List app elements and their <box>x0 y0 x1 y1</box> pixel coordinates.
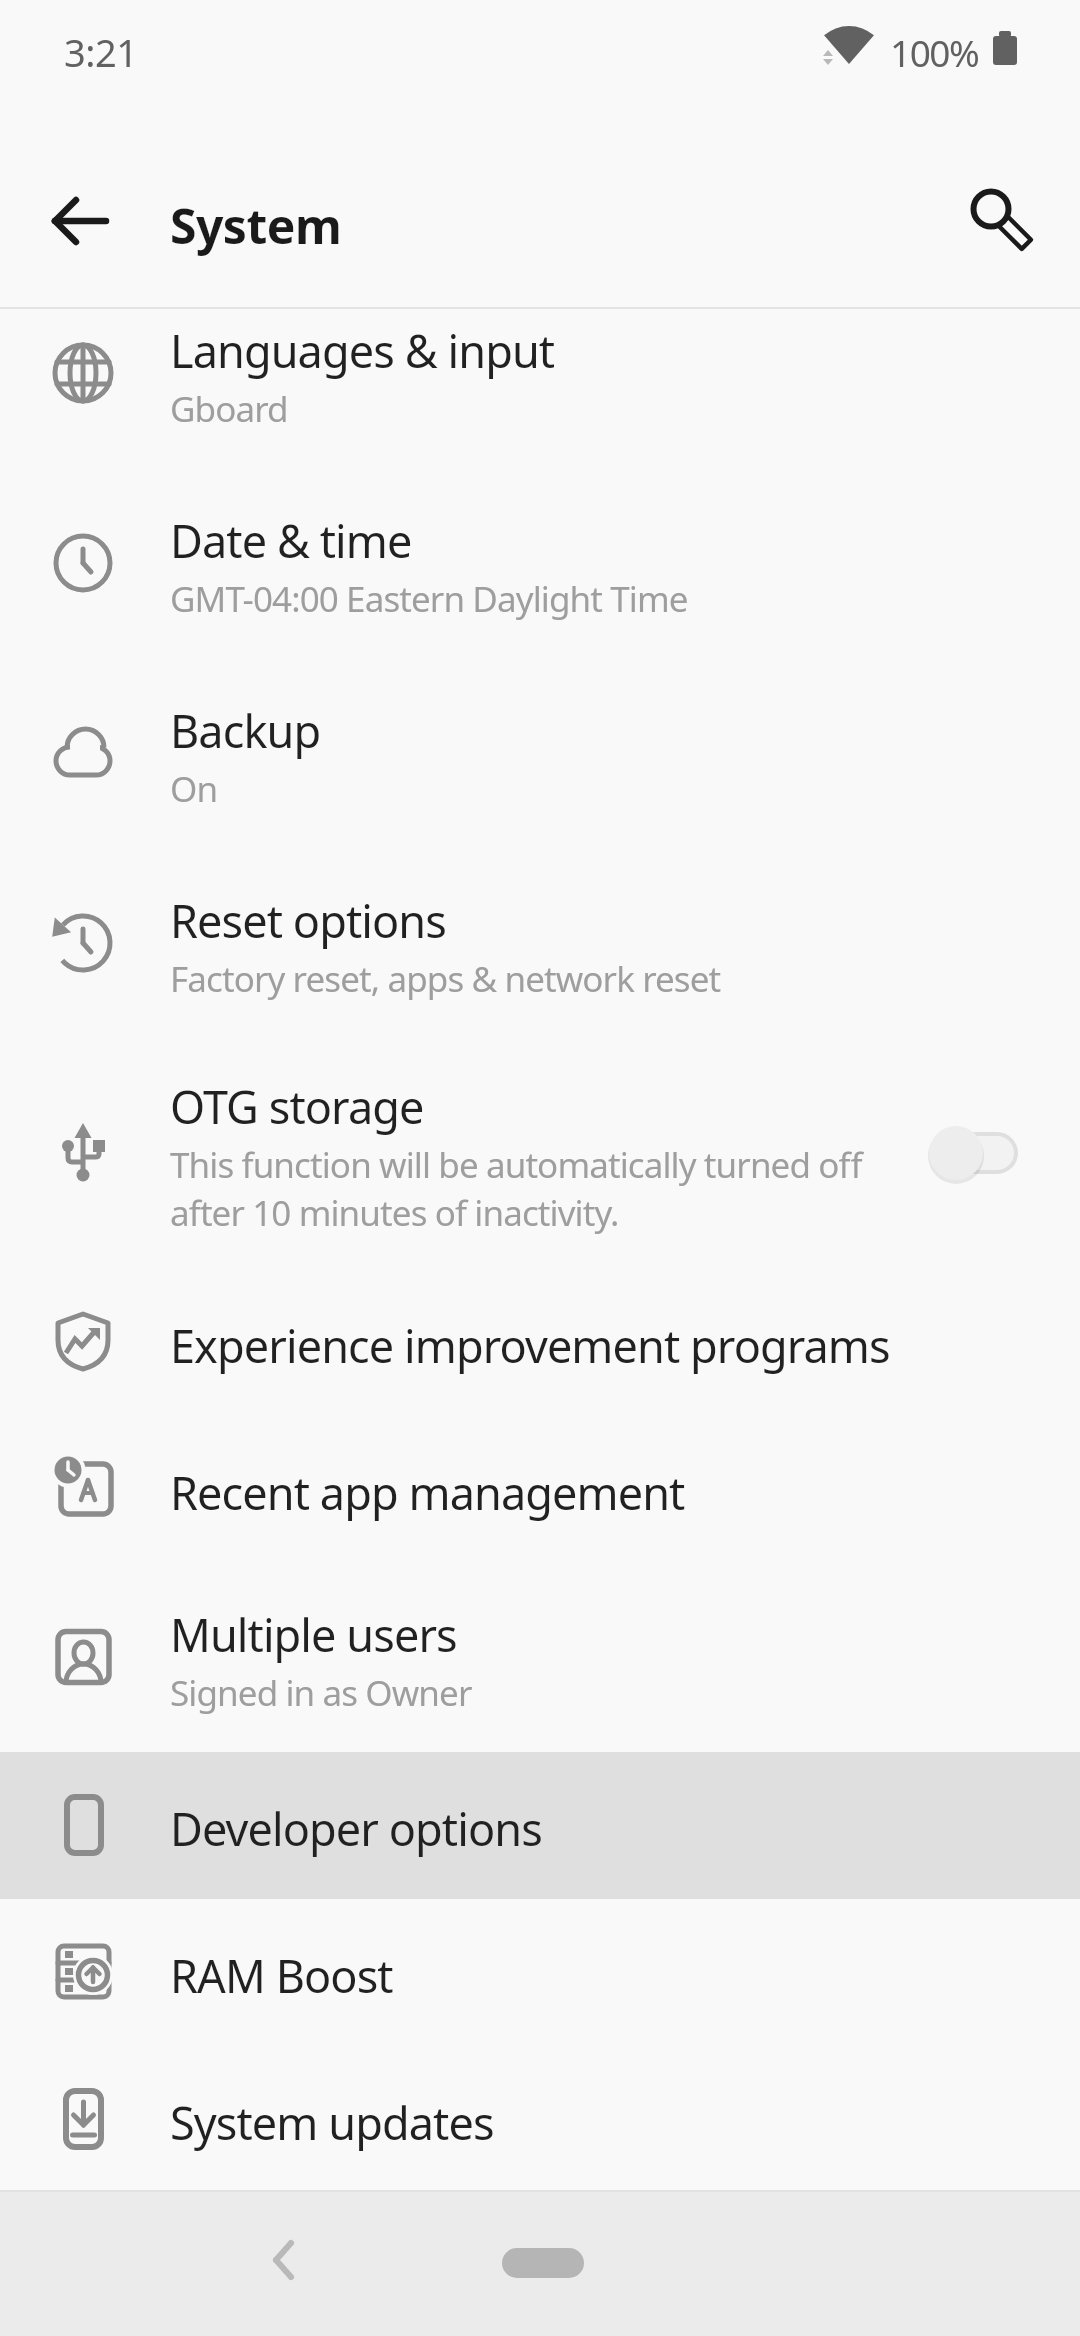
staticText: Multiple users <box>170 1604 457 1665</box>
staticText: Signed in as Owner <box>170 1669 472 1717</box>
staticText: On <box>170 765 218 813</box>
staticText: Recent app management <box>170 1462 685 1523</box>
button[interactable]: Recent app management <box>0 1416 1080 1563</box>
button[interactable] <box>243 2220 323 2300</box>
staticText: Experience improvement programs <box>170 1315 890 1376</box>
staticText: System <box>170 193 342 258</box>
button[interactable]: Reset options <box>0 848 1080 1038</box>
staticText: System updates <box>170 2092 494 2153</box>
button[interactable]: Languages & input <box>0 278 1080 468</box>
staticText: Factory reset, apps & network reset <box>170 955 721 1003</box>
staticText: 3:21 <box>64 26 138 78</box>
staticText: OTG storage <box>170 1076 424 1137</box>
button[interactable]: Experience improvement programs <box>0 1269 1080 1416</box>
staticText: 100% <box>890 27 979 77</box>
button[interactable] <box>955 180 1035 260</box>
button[interactable]: System updates <box>0 2046 1080 2193</box>
staticText: RAM Boost <box>170 1945 393 2006</box>
staticText: Developer options <box>170 1798 542 1859</box>
staticText: Languages & input <box>170 320 555 381</box>
button[interactable]: Backup <box>0 658 1080 848</box>
button[interactable]: Developer options <box>0 1752 1080 1899</box>
button[interactable]: Multiple users <box>0 1563 1080 1752</box>
staticText: Backup <box>170 700 321 761</box>
staticText: Gboard <box>170 385 288 433</box>
button[interactable] <box>40 190 104 254</box>
staticText: Reset options <box>170 890 446 951</box>
staticText: Date & time <box>170 510 412 571</box>
button[interactable]: Date & time <box>0 468 1080 658</box>
staticText: This function will be automatically turn… <box>170 1141 862 1237</box>
button[interactable]: OTG storage <box>0 1038 1080 1269</box>
button[interactable] <box>502 2248 584 2278</box>
button[interactable]: RAM Boost <box>0 1899 1080 2046</box>
staticText: GMT-04:00 Eastern Daylight Time <box>170 575 688 623</box>
